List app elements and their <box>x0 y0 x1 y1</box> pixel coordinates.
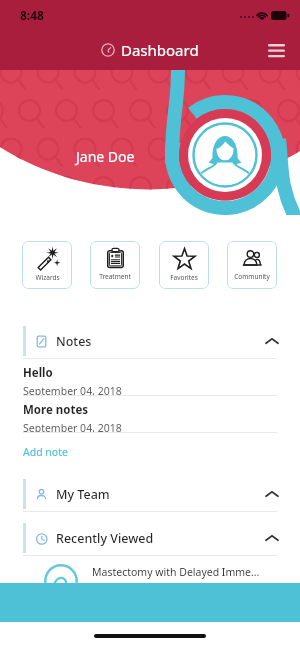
staticText: Dashboard <box>121 40 199 60</box>
staticText: Jane Doe <box>76 147 135 166</box>
button[interactable]: Mastectomy with Delayed Imme... <box>0 556 300 606</box>
staticText: September 04, 2018 <box>23 384 122 396</box>
button[interactable]: Collapse Notes <box>260 329 284 353</box>
button[interactable]: Menu <box>260 34 292 66</box>
staticText: My Team <box>56 486 110 503</box>
staticText: Favorites <box>170 273 198 282</box>
staticText: Recently Viewed <box>56 530 154 547</box>
staticText: Community <box>234 272 270 281</box>
staticText: More notes <box>23 402 89 418</box>
staticText: Mastectomy with Delayed Imme... <box>92 565 260 579</box>
staticText: Treatment <box>99 272 131 281</box>
button[interactable]: Hello <box>23 359 277 396</box>
staticText: Wizards <box>35 273 60 282</box>
staticText: Notes <box>56 333 92 350</box>
button[interactable]: Favorites <box>159 241 209 289</box>
button[interactable]: Treatment <box>90 241 140 289</box>
button[interactable]: Community <box>227 241 277 289</box>
button[interactable]: Add note <box>0 433 300 470</box>
staticText: September 04, 2018 <box>23 421 122 433</box>
button[interactable]: More notes <box>23 396 277 433</box>
staticText: Hello <box>23 365 53 381</box>
button[interactable]: Wizards <box>22 241 72 289</box>
button[interactable]: Collapse My Team <box>260 482 284 506</box>
button[interactable]: Collapse Recently Viewed <box>260 526 284 550</box>
staticText: Add note <box>23 445 68 459</box>
button[interactable]: Recently Viewed <box>0 520 300 556</box>
button[interactable]: My Team <box>0 476 300 512</box>
staticText: 8:48 <box>20 7 44 23</box>
button[interactable]: Notes <box>0 323 300 359</box>
